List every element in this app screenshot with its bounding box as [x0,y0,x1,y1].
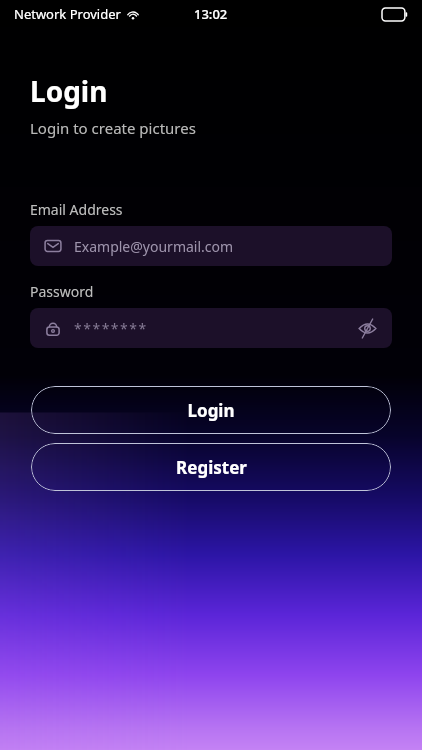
staticText: Login to create pictures [30,118,196,138]
button[interactable]: Example@yourmail.com [30,226,392,266]
staticText: Register [176,456,247,479]
staticText: Email Address [30,200,123,219]
staticText: Network Provider [14,5,121,23]
staticText: Login [30,72,108,110]
staticText: Example@yourmail.com [74,237,234,256]
button[interactable]: Login [31,386,391,434]
button[interactable]: ******** [30,308,392,348]
staticText: Password [30,282,94,301]
staticText: Login [187,399,235,422]
button[interactable]: Register [31,443,391,491]
staticText: ******** [74,319,352,338]
staticText: 13:02 [194,5,228,23]
button[interactable]: Show password [352,313,382,343]
